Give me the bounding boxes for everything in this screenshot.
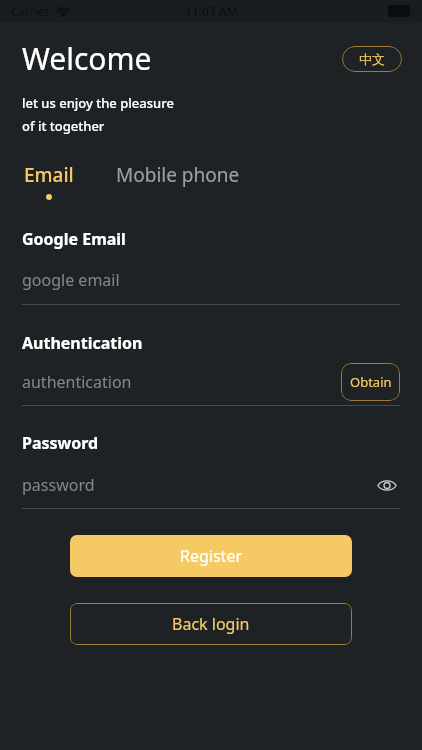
staticText: Google Email: [22, 228, 126, 250]
staticText: Authentication: [22, 332, 143, 354]
staticText: Back login: [172, 613, 250, 635]
staticText: password: [22, 474, 95, 496]
staticText: let us enjoy the pleasure: [22, 94, 174, 112]
button[interactable]: authentication: [22, 363, 341, 401]
staticText: Mobile phone: [116, 162, 240, 188]
staticText: 11:03 AM: [185, 3, 238, 19]
button[interactable]: Obtain: [341, 363, 400, 401]
button[interactable]: Back login: [70, 603, 352, 645]
button[interactable]: Register: [70, 535, 352, 577]
button[interactable]: Email: [22, 161, 76, 201]
staticText: Password: [22, 432, 99, 454]
staticText: Obtain: [350, 373, 392, 391]
button[interactable]: password: [22, 471, 374, 499]
button[interactable]: Show password: [374, 472, 400, 498]
button[interactable]: google email: [22, 269, 400, 305]
staticText: of it together: [22, 117, 105, 135]
staticText: google email: [22, 269, 120, 291]
staticText: Welcome: [22, 38, 152, 79]
staticText: Register: [180, 545, 243, 567]
staticText: Email: [24, 162, 74, 188]
button[interactable]: Mobile phone: [114, 161, 242, 189]
staticText: Carrier: [11, 3, 51, 19]
staticText: authentication: [22, 371, 132, 393]
staticText: 中文: [359, 51, 385, 67]
button[interactable]: 中文: [342, 46, 402, 72]
